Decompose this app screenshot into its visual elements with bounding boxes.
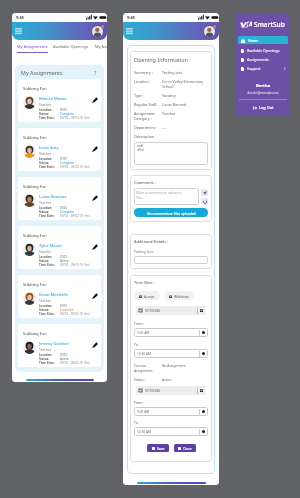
staticText: 9:30 AM xyxy=(137,331,150,335)
staticText: DVIS xyxy=(60,108,67,112)
button[interactable]: Edit xyxy=(92,146,98,152)
staticText: Testing test xyxy=(162,70,182,75)
button[interactable]: My Assignments xyxy=(17,44,48,53)
staticText: Extra duty xyxy=(39,145,59,150)
staticText: To : xyxy=(134,420,140,425)
button[interactable]: Profile xyxy=(92,25,104,37)
button[interactable]: Available Openings xyxy=(238,46,288,55)
button[interactable]: Assignments xyxy=(238,55,288,64)
button[interactable]: 12:30 AM xyxy=(134,349,208,358)
staticText: Teacher xyxy=(39,249,52,253)
staticText: Home xyxy=(248,38,259,43)
staticText: 9:45 xyxy=(16,15,24,20)
button[interactable]: Help xyxy=(92,69,99,76)
button[interactable]: Save xyxy=(147,444,169,452)
button[interactable]: Menu xyxy=(126,28,133,35)
staticText: dr.sub.t@example.com xyxy=(238,91,288,95)
staticText: 5/19/2026 xyxy=(145,389,161,393)
staticText: My Assignments xyxy=(95,44,107,49)
button[interactable]: Edit xyxy=(92,244,98,250)
button[interactable]: Withdraw xyxy=(164,291,194,300)
staticText: Teacher xyxy=(39,347,52,351)
staticText: Location : xyxy=(134,79,151,84)
button[interactable]: Close xyxy=(174,444,196,452)
staticText: Summary : xyxy=(134,70,153,75)
button[interactable]: Send xyxy=(201,189,208,196)
staticText: Assignments xyxy=(247,57,269,62)
staticText: Vacancy xyxy=(162,93,176,98)
button[interactable]: Support xyxy=(238,64,288,73)
button[interactable]: Subbing For: xyxy=(18,324,101,367)
staticText: Regular Staff : xyxy=(134,102,159,107)
button[interactable]: 9:30 AM xyxy=(134,407,208,416)
staticText: ? xyxy=(94,69,97,76)
staticText: Bertha xyxy=(238,83,288,89)
staticText: Parking Spot xyxy=(134,249,154,253)
staticText: Department : xyxy=(134,125,158,130)
staticText: Canceled xyxy=(60,308,74,312)
staticText: Subbing For: xyxy=(23,233,48,238)
button[interactable]: 5/19/2026 xyxy=(136,386,206,395)
button[interactable]: Write a comment or upload a File... xyxy=(134,188,199,205)
button[interactable]: Log Out xyxy=(238,105,288,110)
staticText: From : xyxy=(134,321,145,326)
button[interactable]: Edit xyxy=(92,97,98,103)
button[interactable]: Subbing For: xyxy=(18,275,101,318)
staticText: Time Slots: xyxy=(39,165,55,169)
staticText: Location: xyxy=(39,108,53,112)
staticText: Location: xyxy=(39,353,53,357)
button[interactable]: Edit xyxy=(92,293,98,299)
staticText: 9:45 xyxy=(127,15,135,20)
staticText: 09/02 - 09/02 (9: 0m) xyxy=(60,165,90,169)
button[interactable]: Menu xyxy=(15,28,22,35)
staticText: Save xyxy=(157,446,165,451)
staticText: Complete xyxy=(60,112,75,116)
button[interactable]: 5/19/2026 xyxy=(136,306,206,315)
staticText: No comments or files uploaded xyxy=(147,211,196,215)
staticText: DVIS xyxy=(60,157,67,161)
button[interactable]: Edit xyxy=(92,342,98,348)
button[interactable]: Home xyxy=(238,36,288,44)
staticText: Monica Mason xyxy=(39,96,67,101)
button[interactable]: Accept xyxy=(134,291,160,300)
staticText: Teacher xyxy=(39,200,52,204)
button[interactable]: My Assignments xyxy=(95,44,107,49)
staticText: DVIS xyxy=(60,353,67,357)
staticText: Time Slots : xyxy=(134,280,155,285)
staticText: 12:30 AM xyxy=(137,352,151,356)
staticText: Teacher xyxy=(39,298,52,302)
staticText: 09/02 - 09/02 (9: 0m) xyxy=(60,361,90,365)
staticText: Cerro Valley Elementary School xyxy=(162,79,208,89)
staticText: Status: xyxy=(39,161,49,165)
staticText: Subbing For: xyxy=(23,184,48,189)
button[interactable]: Edit xyxy=(92,195,98,201)
staticText: Close xyxy=(183,446,192,451)
button[interactable]: Subbing For: xyxy=(18,177,101,220)
staticText: Type : xyxy=(134,93,145,98)
button[interactable]: 12:30 AM xyxy=(134,427,208,436)
button[interactable]: 9:30 AM xyxy=(134,328,208,337)
button[interactable]: Subbing For: xyxy=(18,128,101,171)
staticText: To : xyxy=(134,342,140,347)
staticText: Location: xyxy=(39,206,53,210)
button[interactable]: Profile xyxy=(204,25,216,37)
staticText: Subbing For: xyxy=(23,86,48,91)
staticText: Status: xyxy=(39,259,49,263)
staticText: Teacher xyxy=(39,151,52,155)
staticText: Subbing For: xyxy=(23,135,48,140)
button[interactable] xyxy=(134,256,208,264)
staticText: Assignment Category : xyxy=(134,111,162,121)
staticText: 12:30 AM xyxy=(137,430,151,434)
staticText: No Assignment xyxy=(162,363,186,367)
staticText: Teacher xyxy=(39,102,52,106)
staticText: Current Assignment : xyxy=(134,363,162,373)
staticText: Subbing For: xyxy=(23,282,48,287)
staticText: 09/02 - 09/02 (9: 0m) xyxy=(60,116,90,120)
staticText: Location: xyxy=(39,304,53,308)
staticText: 09/02 - 09/02 (9: 0m) xyxy=(60,214,90,218)
button[interactable]: Subbing For: xyxy=(18,226,101,269)
button[interactable]: No comments or files uploaded xyxy=(134,208,208,217)
button[interactable]: Attach xyxy=(201,198,208,205)
button[interactable]: Subbing For: xyxy=(18,79,101,122)
button[interactable]: Available Openings xyxy=(53,44,91,49)
